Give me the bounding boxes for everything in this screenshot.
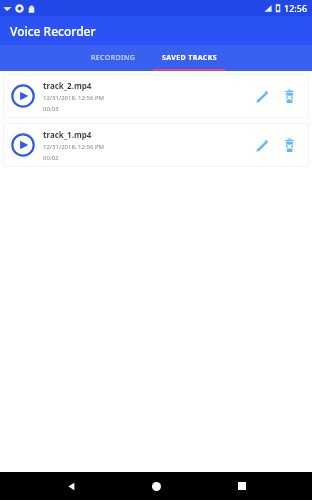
staticText: 12/31/2018, 12:56 PM [43,143,105,151]
staticText: 00:03 [43,105,59,113]
staticText: 00:02 [43,154,59,162]
staticText: 12/31/2018, 12:56 PM [43,94,105,102]
button[interactable]: Rename [247,131,275,159]
staticText: RECORDING [91,53,136,63]
button[interactable]: Home [141,472,171,500]
button[interactable]: Recent apps [227,472,257,500]
button[interactable]: Play [3,123,309,167]
button[interactable]: Play [10,83,36,109]
button[interactable]: SAVED TRACKS [148,45,230,71]
staticText: track_1.mp4 [43,129,92,140]
button[interactable]: Play [3,74,309,118]
staticText: 12:56 [284,2,308,14]
button[interactable]: RECORDING [78,45,148,71]
button[interactable]: Play [10,132,36,158]
button[interactable]: Delete [275,82,303,110]
staticText: track_2.mp4 [43,80,92,91]
staticText: SAVED TRACKS [162,53,217,63]
staticText: Voice Recorder [10,23,96,39]
button[interactable]: Rename [247,82,275,110]
button[interactable]: Delete [275,131,303,159]
button[interactable]: Back [56,472,86,500]
